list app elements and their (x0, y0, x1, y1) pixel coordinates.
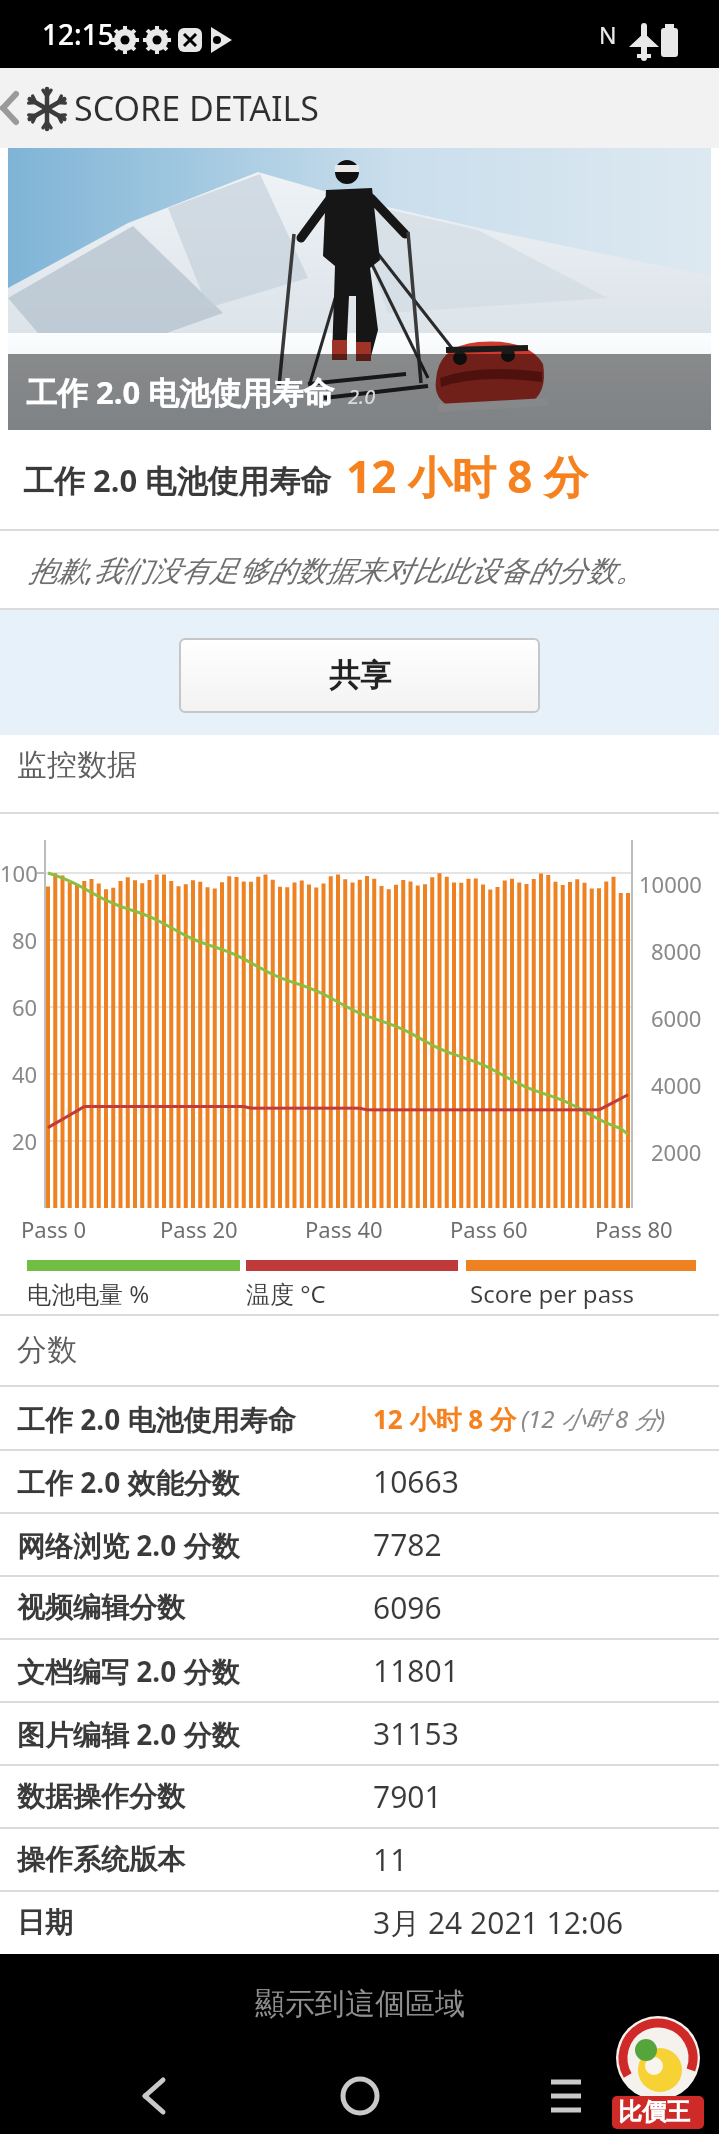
staticText: 操作系统版本 (17, 1842, 185, 1877)
staticText: Pass 80 (595, 1214, 673, 1244)
staticText: 11 (373, 1839, 408, 1880)
staticText: 工作 2.0 电池使用寿命 (23, 459, 332, 501)
button[interactable]: 视频编辑分数 (0, 1576, 719, 1639)
staticText: 工作 2.0 电池使用寿命 (17, 1400, 296, 1438)
staticText: 80 (12, 925, 38, 955)
button[interactable]: 工作 2.0 效能分数 (0, 1450, 719, 1513)
staticText: 40 (12, 1059, 38, 1089)
staticText: 数据操作分数 (17, 1779, 185, 1814)
staticText: 2.0 (348, 383, 376, 410)
staticText: 100 (0, 858, 38, 888)
button[interactable]: 工作 2.0 电池使用寿命 (0, 1387, 719, 1450)
staticText: 监控数据 (17, 746, 137, 784)
staticText: Pass 0 (21, 1214, 87, 1244)
staticText: 4000 (651, 1070, 702, 1100)
staticText: 20 (12, 1126, 38, 1156)
staticText: 文档编写 2.0 分数 (17, 1652, 240, 1690)
button[interactable]: 图片编辑 2.0 分数 (0, 1702, 719, 1765)
staticText: 共享 (329, 656, 391, 695)
staticText: 顯示到這個區域 (255, 1985, 465, 2023)
staticText: SCORE DETAILS (74, 85, 319, 131)
staticText: 31153 (373, 1713, 459, 1754)
button[interactable]: 操作系统版本 (0, 1828, 719, 1891)
staticText: 10000 (639, 869, 702, 899)
staticText: 8000 (651, 936, 702, 966)
staticText: 分数 (17, 1331, 77, 1369)
button[interactable]: SCORE DETAILS (74, 68, 319, 148)
staticText: 11801 (373, 1650, 459, 1691)
button[interactable]: 共享 (179, 638, 540, 713)
staticText: 12 小时 8 分 (346, 446, 588, 506)
staticText: N (599, 19, 617, 50)
button[interactable]: 数据操作分数 (0, 1765, 719, 1828)
staticText: 3月 24 2021 12:06 (373, 1902, 624, 1943)
staticText: 12 小时 8 分 (373, 1401, 516, 1437)
staticText: 图片编辑 2.0 分数 (17, 1715, 240, 1753)
button[interactable]: 文档编写 2.0 分数 (0, 1639, 719, 1702)
button[interactable] (330, 2064, 390, 2124)
staticText: 12:15 (42, 15, 114, 53)
staticText: 7901 (373, 1776, 442, 1817)
staticText: 温度 °C (246, 1277, 326, 1310)
staticText: 7782 (373, 1524, 442, 1565)
staticText: 6000 (651, 1003, 702, 1033)
staticText: 2000 (651, 1137, 702, 1167)
button[interactable] (130, 2064, 190, 2124)
staticText: Pass 60 (450, 1214, 528, 1244)
staticText: 日期 (17, 1905, 73, 1940)
staticText: 视频编辑分数 (17, 1590, 185, 1625)
button[interactable] (536, 2064, 596, 2124)
staticText: 工作 2.0 效能分数 (17, 1463, 240, 1501)
staticText: 6096 (373, 1587, 442, 1628)
staticText: 比價王 (618, 2097, 690, 2127)
staticText: Score per pass (470, 1277, 635, 1310)
button[interactable]: 日期 (0, 1891, 719, 1954)
staticText: 60 (12, 992, 38, 1022)
staticText: 工作 2.0 电池使用寿命 (26, 371, 335, 413)
staticText: Pass 20 (160, 1214, 238, 1244)
staticText: 网络浏览 2.0 分数 (17, 1526, 240, 1564)
button[interactable]: 网络浏览 2.0 分数 (0, 1513, 719, 1576)
staticText: Pass 40 (305, 1214, 383, 1244)
staticText: 电池电量 % (27, 1277, 150, 1310)
staticText: (12 小时 8 分) (521, 1402, 666, 1435)
staticText: 10663 (373, 1461, 459, 1502)
staticText: 抱歉,我们没有足够的数据来对比此设备的分数。 (28, 550, 645, 590)
